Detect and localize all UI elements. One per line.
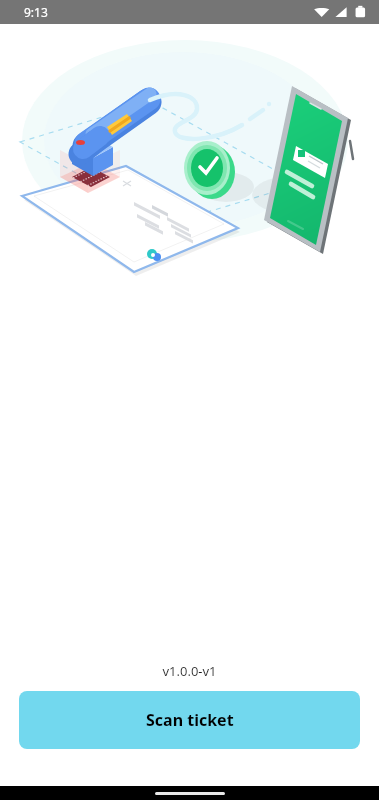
staticText: Scan ticket xyxy=(146,709,234,731)
button[interactable]: Scan ticket xyxy=(19,691,360,749)
staticText: v1.0.0-v1 xyxy=(0,662,379,680)
staticText: 9:13 xyxy=(24,4,48,20)
other: Status icons xyxy=(313,5,369,19)
